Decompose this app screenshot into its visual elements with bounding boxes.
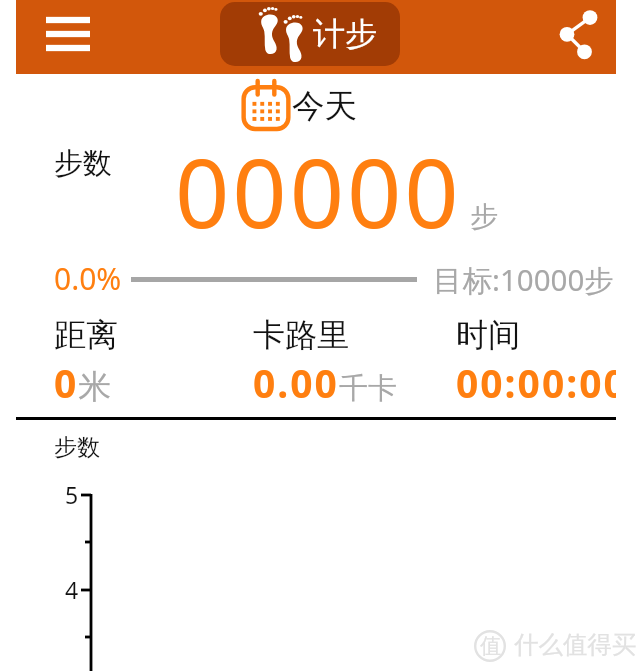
staticText: 0米 [54, 356, 112, 409]
staticText: 步数 [54, 433, 100, 462]
staticText: 值 [480, 633, 501, 659]
button[interactable]: 时间 [456, 315, 616, 405]
staticText: 5 [65, 479, 79, 510]
staticText: 4 [65, 574, 79, 605]
staticText: 卡路里 [253, 315, 349, 355]
staticText: 计步 [313, 14, 377, 54]
staticText: 00:00:00 [456, 356, 616, 405]
button[interactable]: 计步 [220, 2, 400, 66]
staticText: 0.0% [54, 258, 122, 299]
staticText: 0.00千卡 [253, 356, 397, 409]
button[interactable]: 今天 [240, 78, 357, 132]
staticText: 步 [470, 199, 498, 234]
staticText: 时间 [456, 315, 520, 355]
button[interactable]: 卡路里 [253, 315, 397, 368]
button[interactable]: 距离 [54, 315, 118, 368]
staticText: 距离 [54, 315, 118, 355]
staticText: 目标:10000步 [433, 259, 614, 299]
staticText: 今天 [292, 86, 357, 127]
staticText: 00000 [175, 126, 462, 255]
button[interactable]: Share [556, 8, 616, 66]
staticText: 什么值得买 [514, 629, 637, 660]
staticText: 步数 [54, 145, 112, 182]
button[interactable]: Menu [41, 6, 95, 62]
